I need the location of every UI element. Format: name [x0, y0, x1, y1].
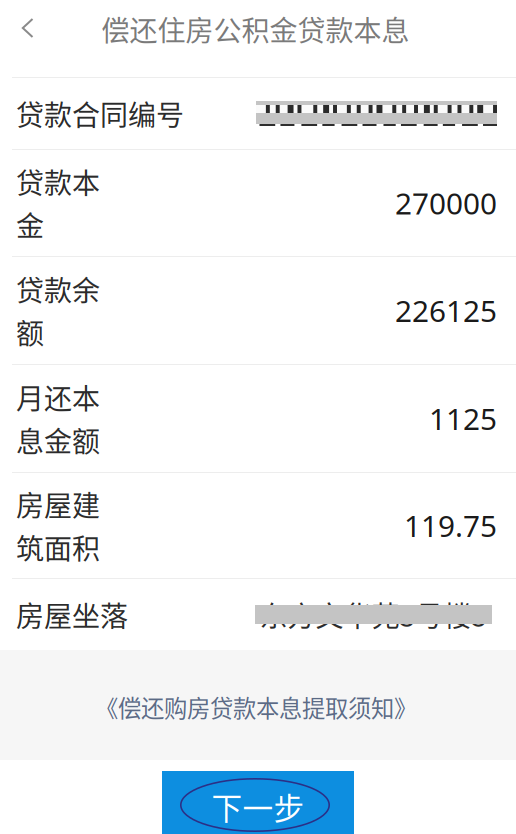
- staticText: 房屋建: [16, 484, 100, 524]
- staticText: 270000: [395, 183, 497, 223]
- staticText: 金: [16, 204, 44, 245]
- staticText: 月还本: [16, 377, 100, 417]
- staticText: 贷款余: [16, 269, 100, 309]
- staticText: 房屋坐落: [16, 594, 128, 635]
- staticText: 226125: [395, 290, 497, 331]
- staticText: 《偿还购房贷款本息提取须知》: [95, 690, 417, 724]
- staticText: 额: [16, 312, 44, 352]
- button[interactable]: 《偿还购房贷款本息提取须知》: [85, 678, 431, 732]
- staticText: 下一步: [211, 784, 304, 829]
- staticText: 1125: [429, 398, 497, 439]
- staticText: 息金额: [16, 420, 100, 460]
- staticText: 贷款合同编号: [16, 93, 184, 134]
- button[interactable]: 下一步: [162, 771, 354, 834]
- staticText: 119.75: [404, 505, 497, 546]
- staticText: 贷款本: [16, 161, 100, 202]
- staticText: 筑面积: [16, 527, 100, 567]
- staticText: 东方文华苑3号楼5: [259, 594, 487, 635]
- staticText: 偿还住房公积金贷款本息: [101, 9, 409, 49]
- button[interactable]: Back: [0, 3, 33, 53]
